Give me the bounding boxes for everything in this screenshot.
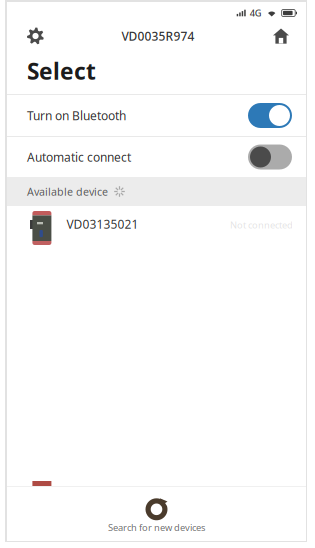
button[interactable]: VD03135021	[7, 206, 306, 250]
staticText: Turn on Bluetooth	[27, 107, 126, 123]
staticText: Not connected	[230, 219, 293, 231]
button[interactable]: Turn on Bluetooth	[7, 95, 306, 136]
staticText: Select	[27, 56, 96, 86]
staticText: Available device	[27, 184, 108, 199]
button[interactable]: Search for new devices	[7, 487, 306, 540]
button[interactable]: Settings	[27, 24, 53, 48]
staticText: 4G	[250, 7, 262, 19]
button[interactable]: Automatic connect	[7, 137, 306, 177]
button[interactable]: Device	[7, 481, 306, 486]
staticText: VD0035R974	[121, 28, 194, 44]
button[interactable]: Home	[263, 24, 289, 48]
staticText: Automatic connect	[27, 149, 131, 165]
staticText: VD03135021	[66, 216, 138, 232]
staticText: Search for new devices	[108, 521, 205, 534]
